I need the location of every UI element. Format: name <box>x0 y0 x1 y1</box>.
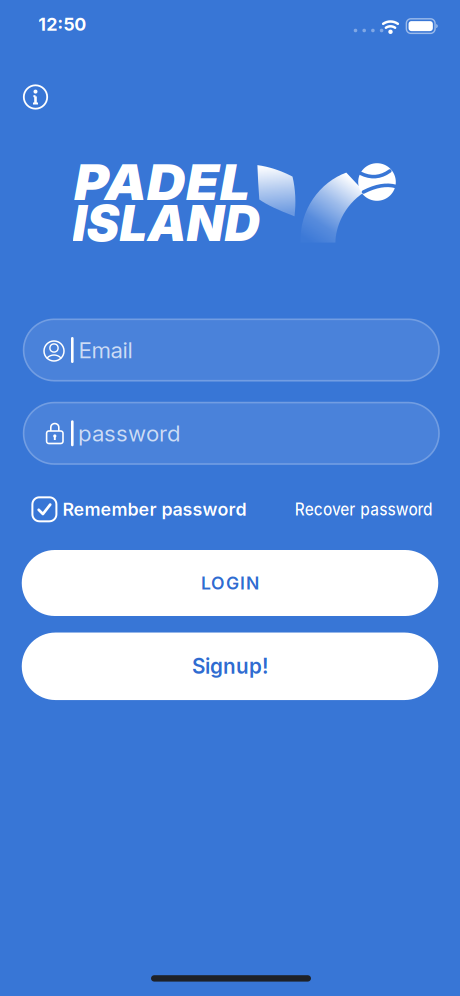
staticText: 12:50 <box>38 13 86 35</box>
staticText: ISLAND <box>72 193 260 253</box>
button[interactable]: Recover password <box>288 499 439 520</box>
staticText: Recover password <box>288 499 439 520</box>
button[interactable]: Email <box>23 318 440 381</box>
staticText: Remember password <box>62 498 246 520</box>
button[interactable]: LOGIN <box>22 550 438 616</box>
button[interactable]: Signup! <box>22 632 438 700</box>
staticText: password <box>78 420 181 447</box>
button[interactable]: Remember password <box>32 497 246 521</box>
button[interactable]: Info <box>17 79 53 115</box>
staticText: LOGIN <box>201 572 259 594</box>
button[interactable]: password <box>23 402 440 465</box>
staticText: PADEL <box>81 152 243 212</box>
staticText: Signup! <box>192 654 268 679</box>
staticText: Email <box>79 336 133 363</box>
